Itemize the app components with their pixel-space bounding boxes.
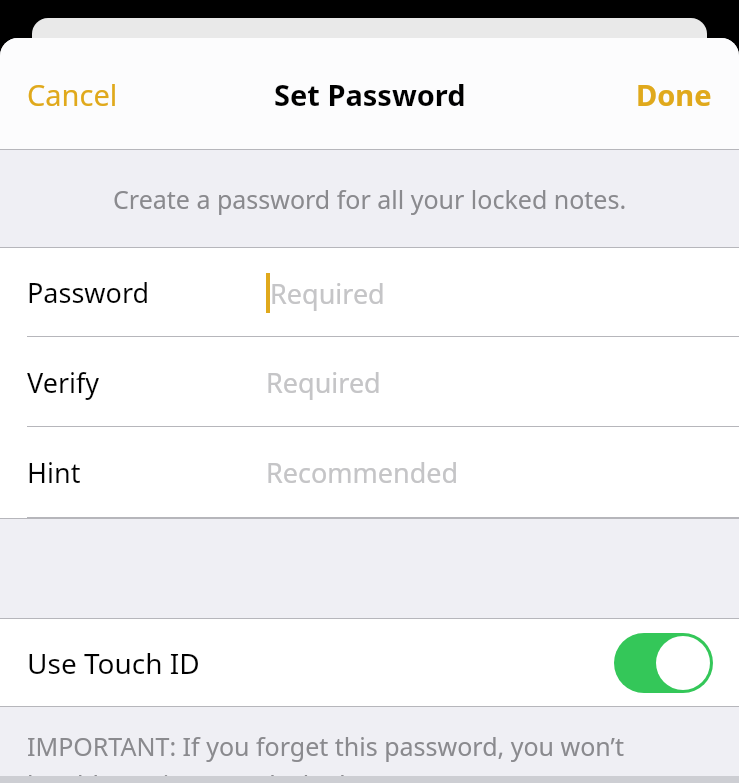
staticText: Verify [27,364,100,401]
button[interactable]: Done [609,61,739,128]
staticText: Use Touch ID [27,644,200,682]
button[interactable]: Use Touch ID [0,619,739,707]
button[interactable]: Hint [0,427,739,518]
button[interactable]: Cancel [0,61,145,128]
staticText: Required [270,275,385,312]
staticText: Cancel [27,75,118,114]
staticText: Password [27,274,150,311]
staticText: Done [636,75,712,114]
staticText: Required [266,364,381,401]
staticText: Recommended [266,454,459,491]
button[interactable]: Use Touch ID toggle, on [614,633,713,693]
button[interactable]: Password [0,248,739,337]
staticText: be able to view your locked notes. [27,767,425,783]
staticText: Create a password for all your locked no… [113,182,627,216]
button[interactable]: Verify [0,337,739,427]
staticText: Hint [27,454,81,491]
staticText: IMPORTANT: If you forget this password, … [27,729,624,763]
staticText: Set Password [274,75,466,114]
